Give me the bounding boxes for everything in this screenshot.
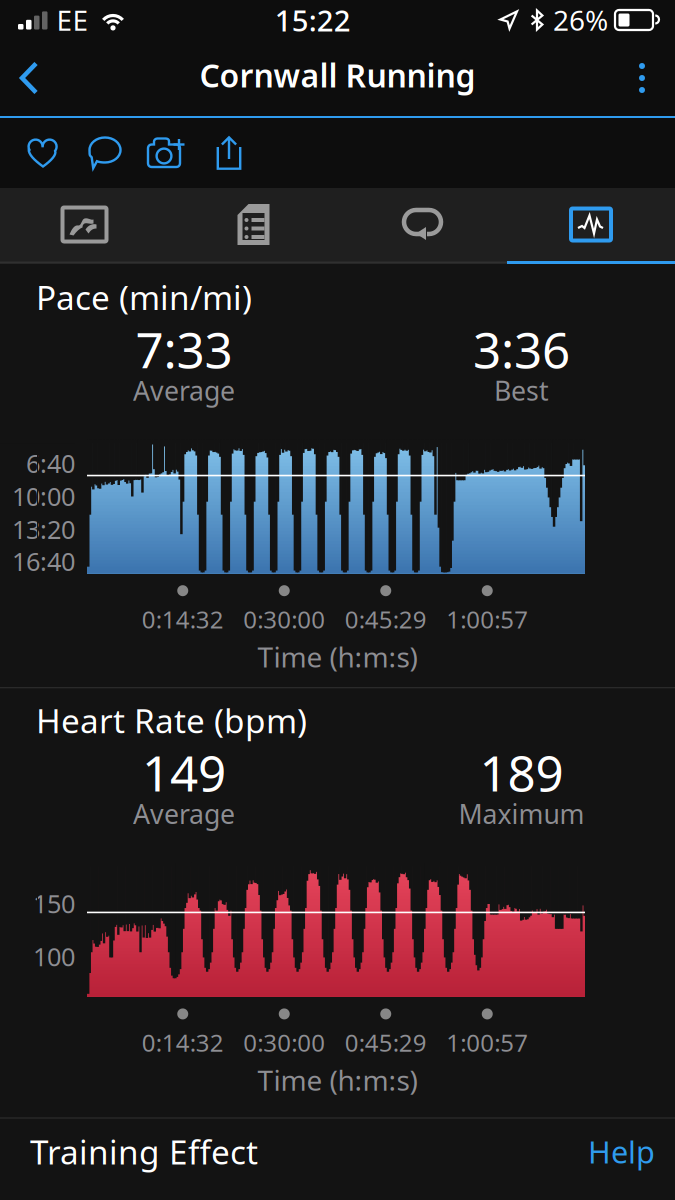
button[interactable]: Like [12,119,74,187]
staticText: 1:00:57 [446,1026,528,1058]
staticText: 3:36 [473,316,570,382]
button[interactable]: Back [0,41,58,115]
staticText: Best [494,373,549,408]
staticText: Cornwall Running [199,54,475,96]
button[interactable]: Map [0,188,169,261]
staticText: 0:14:32 [142,603,224,635]
staticText: Training Effect [30,1129,258,1174]
staticText: Maximum [458,796,584,831]
staticText: Heart Rate (bpm) [36,698,307,742]
button[interactable]: Laps [338,188,507,261]
staticText: 0:45:29 [345,1026,427,1058]
button[interactable]: Share [198,119,260,187]
staticText: Pace (min/mi) [36,275,252,319]
button[interactable]: Help [562,1117,655,1186]
staticText: 15:22 [275,0,351,39]
staticText: 0:14:32 [142,1026,224,1058]
staticText: Help [588,1131,655,1172]
staticText: 26% [553,1,608,39]
staticText: Time (h:m:s) [257,638,417,675]
button[interactable]: Details [169,188,338,261]
staticText: 16:40 [12,544,75,578]
staticText: 1:00:57 [446,603,528,635]
button[interactable]: Comment [74,119,136,187]
staticText: 189 [479,739,563,805]
staticText: 0:30:00 [243,1026,325,1058]
staticText: 150 [33,887,75,920]
button[interactable]: Add photo [136,119,198,187]
button[interactable]: More options [609,41,675,115]
staticText: Time (h:m:s) [257,1061,417,1098]
staticText: 0:30:00 [243,603,325,635]
button[interactable]: Charts [507,188,675,261]
staticText: 0:45:29 [345,603,427,635]
staticText: Average [133,796,235,831]
staticText: 6:40 [26,446,75,480]
staticText: 7:33 [135,316,232,382]
staticText: 149 [142,739,226,805]
staticText: 13:20 [12,512,75,546]
staticText: 100 [33,940,75,973]
staticText: 10:00 [12,479,75,513]
staticText: Average [133,373,235,408]
staticText: EE [56,1,88,39]
